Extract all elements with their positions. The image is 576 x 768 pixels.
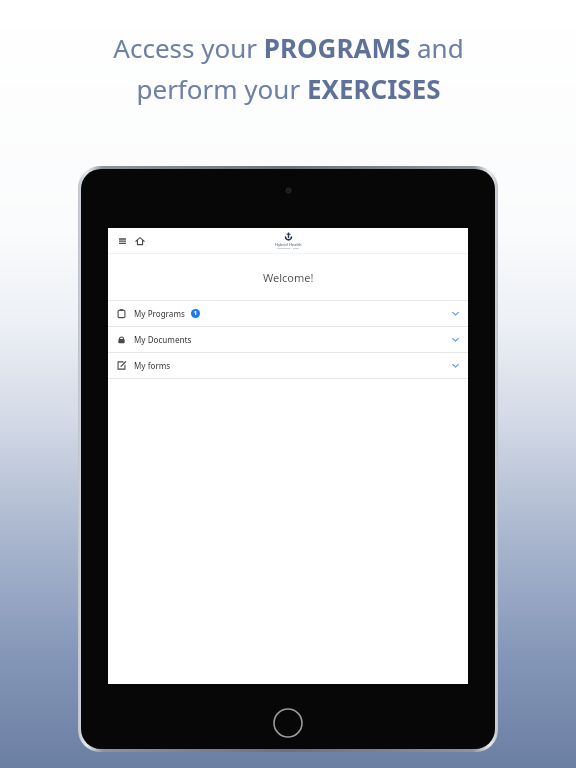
staticText: My Programs: [134, 308, 185, 319]
button[interactable]: My Programs: [108, 301, 468, 326]
button[interactable]: Menu: [114, 233, 130, 249]
staticText: My forms: [134, 360, 171, 371]
staticText: My Documents: [134, 334, 192, 345]
button[interactable]: My Documents: [108, 327, 468, 352]
staticText: 1: [194, 310, 197, 317]
staticText: Welcome!: [263, 270, 314, 285]
staticText: perform your EXERCISES: [136, 71, 441, 106]
staticText: Access your PROGRAMS and: [113, 30, 464, 65]
staticText: Physiotherapy · Pilates: [277, 247, 300, 250]
button[interactable]: Home: [132, 233, 148, 249]
staticText: Hybrid Health: [275, 242, 302, 247]
button[interactable]: My forms: [108, 353, 468, 378]
